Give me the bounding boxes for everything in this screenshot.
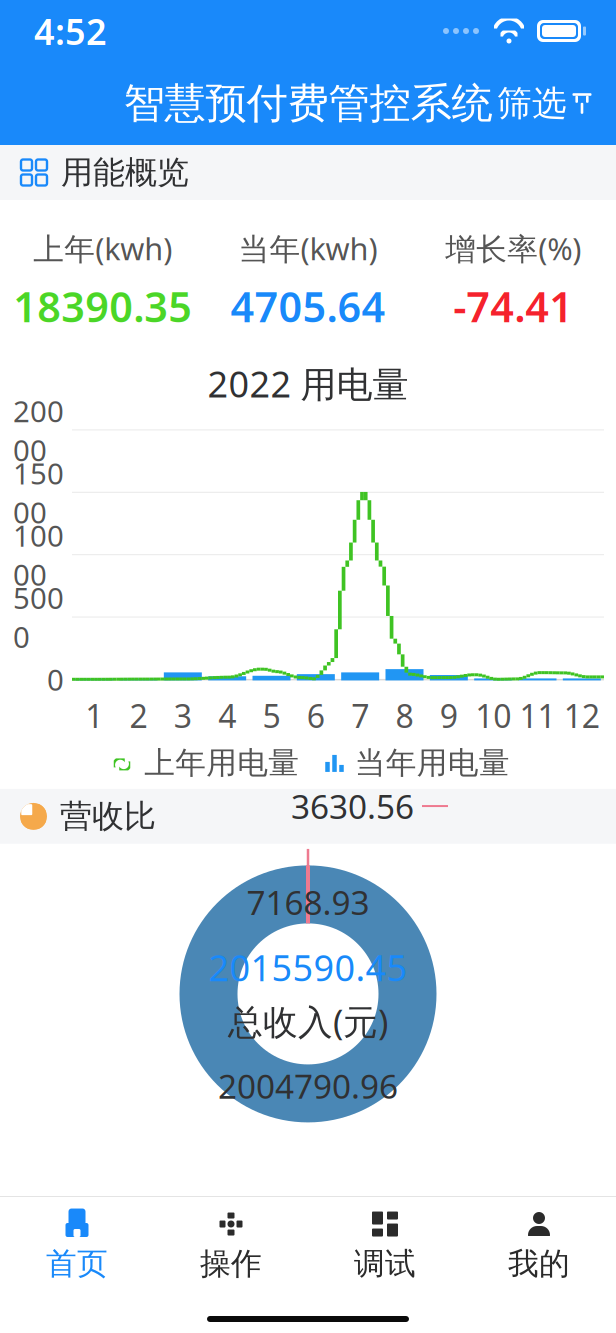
staticText: -74.41 <box>453 279 573 334</box>
staticText: 9 <box>440 694 458 737</box>
staticText: 12 <box>564 694 600 737</box>
staticText: 3630.56 <box>291 784 414 828</box>
staticText: 智慧预付费管控系统 <box>123 78 492 129</box>
staticText: 15000 <box>13 454 64 532</box>
staticText: 操作 <box>200 1245 262 1283</box>
staticText: 调试 <box>354 1245 416 1283</box>
button[interactable]: 调试 <box>308 1197 462 1291</box>
staticText: 2015590.45 <box>208 943 407 991</box>
button[interactable]: 筛选 <box>485 70 604 137</box>
staticText: 3 <box>174 694 192 737</box>
staticText: 10000 <box>13 516 64 594</box>
staticText: 0 <box>47 660 64 699</box>
staticText: 筛选 <box>497 82 567 125</box>
staticText: 我的 <box>508 1245 570 1283</box>
staticText: 20000 <box>13 391 64 469</box>
button[interactable]: 操作 <box>154 1197 308 1291</box>
staticText: 4:52 <box>34 7 107 55</box>
staticText: 增长率(%) <box>445 228 581 269</box>
staticText: 11 <box>519 694 555 737</box>
staticText: 7168.93 <box>246 880 369 924</box>
staticText: 18390.35 <box>13 279 192 334</box>
staticText: 4 <box>218 694 236 737</box>
staticText: 2022 用电量 <box>207 360 408 407</box>
staticText: 用能概览 <box>61 153 189 192</box>
staticText: 上年用电量 <box>144 744 299 782</box>
staticText: 总收入(元) <box>228 998 388 1044</box>
button[interactable]: 首页 <box>0 1197 154 1291</box>
staticText: 1 <box>85 694 103 737</box>
staticText: 2004790.96 <box>218 1064 398 1108</box>
staticText: 4705.64 <box>230 279 385 334</box>
staticText: 当年用电量 <box>355 744 510 782</box>
staticText: 当年(kwh) <box>238 228 377 269</box>
staticText: 7 <box>351 694 369 737</box>
staticText: 5000 <box>13 578 64 656</box>
staticText: 10 <box>475 694 511 737</box>
staticText: 上年(kwh) <box>33 228 172 269</box>
button[interactable]: 我的 <box>462 1197 616 1291</box>
staticText: 8 <box>395 694 413 737</box>
staticText: 6 <box>307 694 325 737</box>
staticText: 营收比 <box>60 797 156 836</box>
staticText: 首页 <box>46 1245 108 1283</box>
staticText: 2 <box>129 694 147 737</box>
staticText: 5 <box>262 694 280 737</box>
